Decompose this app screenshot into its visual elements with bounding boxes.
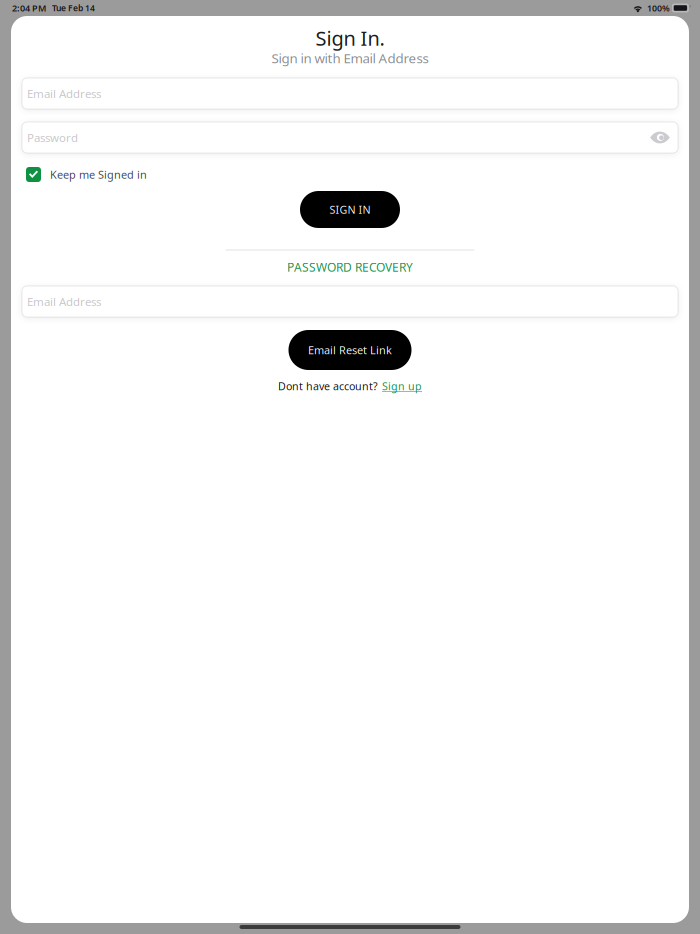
button[interactable]: Email Reset Link (288, 330, 411, 370)
staticText: Dont have account? (278, 379, 378, 393)
button[interactable]: Keep me Signed in (22, 167, 678, 182)
staticText: SIGN IN (329, 202, 370, 217)
staticText: Sign in with Email Address (271, 49, 428, 67)
staticText: Email Address (27, 294, 101, 309)
button[interactable]: PASSWORD RECOVERY (22, 260, 678, 274)
staticText: PASSWORD RECOVERY (287, 259, 413, 275)
button[interactable]: Sign up (382, 379, 422, 393)
button[interactable]: Email Address (22, 286, 678, 317)
button[interactable]: Email Address (22, 78, 678, 109)
staticText: 2:04 PM (12, 2, 46, 14)
staticText: Password (27, 130, 78, 145)
staticText: Email Reset Link (308, 343, 392, 357)
staticText: 100% (647, 2, 670, 14)
staticText: Sign up (382, 379, 422, 393)
staticText: Sign In. (315, 25, 384, 51)
staticText: Email Address (27, 86, 101, 101)
staticText: Tue Feb 14 (52, 2, 95, 14)
button[interactable]: SIGN IN (300, 191, 400, 228)
button[interactable]: Password (22, 122, 678, 153)
staticText: Keep me Signed in (50, 167, 147, 182)
